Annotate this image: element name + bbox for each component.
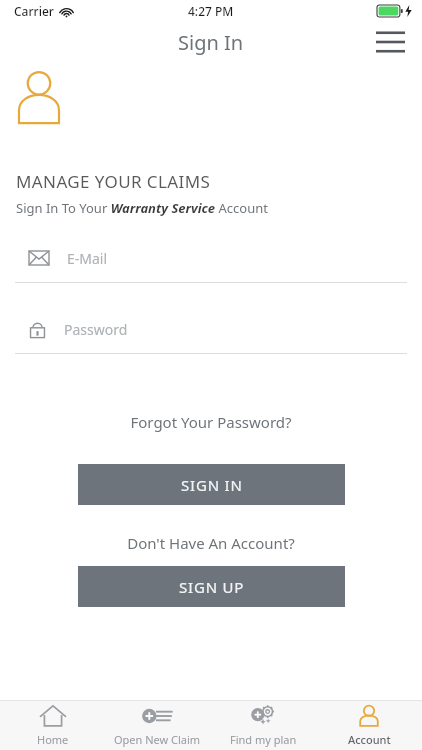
staticText: Sign In To Your Warranty Service Account [16,199,268,217]
staticText: 4:27 PM [188,3,234,19]
button[interactable]: Password [15,316,407,354]
button[interactable]: SIGN IN [78,464,345,505]
staticText: Password [64,320,128,339]
staticText: Forgot Your Password? [130,412,292,432]
button[interactable]: E-Mail [15,245,407,283]
staticText: Don't Have An Account? [127,533,295,553]
staticText: Sign In [178,29,244,56]
staticText: SIGN UP [179,577,245,597]
button[interactable]: Open New Claim [105,701,210,750]
staticText: E-Mail [67,249,108,268]
staticText: MANAGE YOUR CLAIMS [16,170,211,193]
button[interactable]: Account [316,701,422,750]
button[interactable]: Home [0,701,105,750]
button[interactable]: Don't Have An Account? [121,531,301,555]
staticText: Find my plan [230,732,297,747]
staticText: Home [37,732,69,747]
staticText: Carrier [14,3,54,19]
button[interactable]: Menu [370,22,410,62]
button[interactable]: Find my plan [210,701,316,750]
staticText: SIGN IN [181,475,243,495]
button[interactable]: SIGN UP [78,566,345,607]
staticText: Account [348,732,391,747]
staticText: Open New Claim [114,732,201,747]
button[interactable]: Forgot Your Password? [124,410,298,434]
